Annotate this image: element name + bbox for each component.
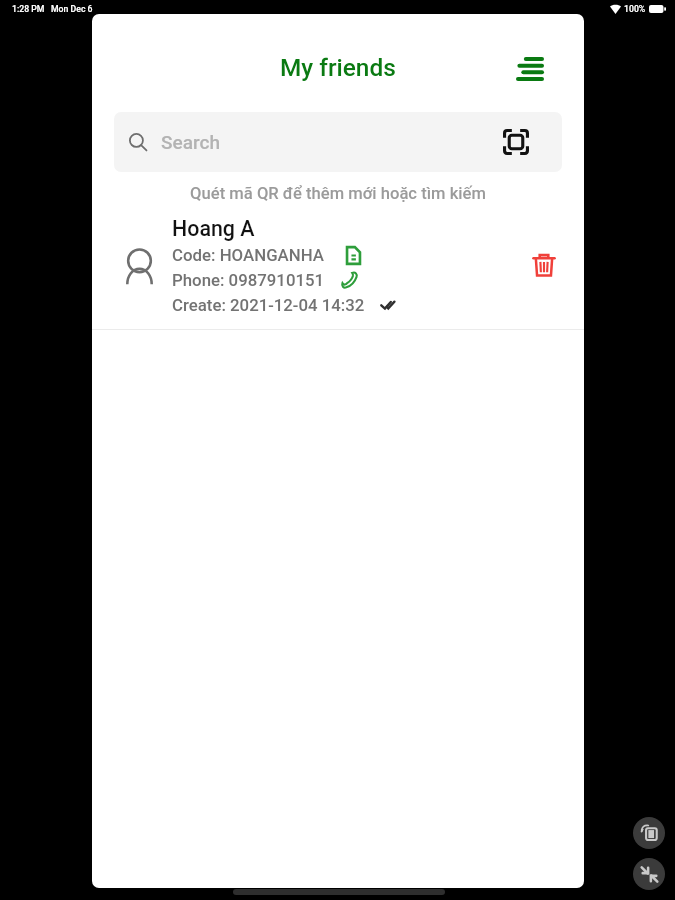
staticText: Phone: 0987910151 bbox=[172, 270, 325, 290]
button[interactable]: Delete friend bbox=[520, 206, 584, 329]
staticText: My friends bbox=[280, 53, 396, 82]
button[interactable]: Call bbox=[341, 271, 359, 290]
staticText: Search bbox=[161, 131, 220, 153]
staticText: Create: 2021-12-04 14:32 bbox=[172, 295, 365, 315]
button[interactable]: Collapse bbox=[633, 858, 665, 890]
button[interactable]: Copy code bbox=[345, 246, 362, 265]
button[interactable]: Scan QR code bbox=[496, 122, 536, 162]
button[interactable]: Hoang A bbox=[92, 206, 584, 330]
button[interactable]: Rotate screen bbox=[633, 817, 665, 849]
staticText: 1:28 PM bbox=[12, 4, 45, 14]
staticText: Mon Dec 6 bbox=[51, 4, 93, 14]
staticText: Quét mã QR để thêm mới hoặc tìm kiếm bbox=[92, 184, 584, 203]
button[interactable]: Search bbox=[114, 112, 562, 172]
button[interactable]: Menu bbox=[506, 45, 554, 93]
staticText: Hoang A bbox=[172, 216, 255, 241]
staticText: 100% bbox=[624, 4, 646, 14]
staticText: Code: HOANGANHA bbox=[172, 245, 324, 265]
